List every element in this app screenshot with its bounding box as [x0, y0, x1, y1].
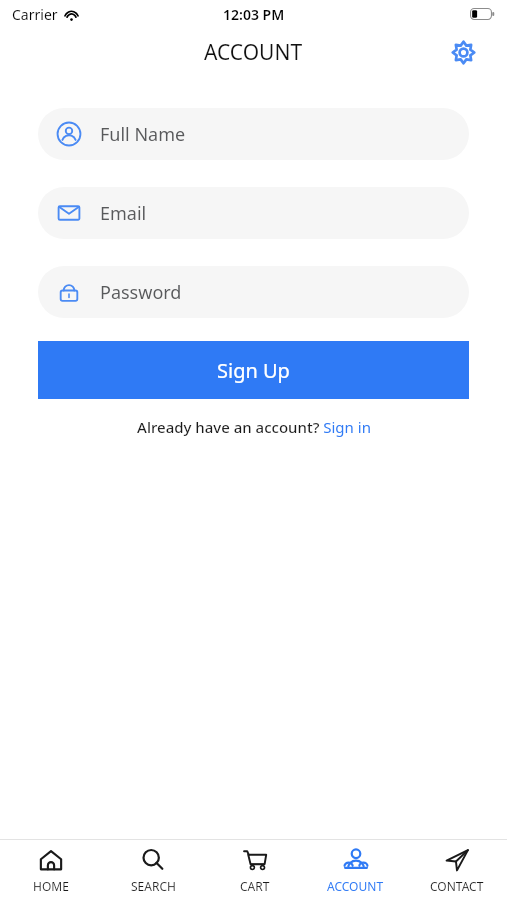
button[interactable]: SEARCH — [102, 840, 204, 900]
button[interactable]: Password — [38, 266, 469, 318]
button[interactable]: Full Name — [38, 108, 469, 160]
staticText: ACCOUNT — [327, 878, 384, 894]
staticText: ACCOUNT — [204, 38, 303, 67]
staticText: Email — [100, 201, 147, 226]
button[interactable]: Settings — [445, 34, 481, 70]
button[interactable]: HOME — [0, 840, 102, 900]
staticText: CART — [240, 878, 270, 894]
button[interactable]: CONTACT — [406, 840, 507, 900]
staticText: Sign Up — [217, 357, 290, 384]
staticText: Password — [100, 280, 182, 305]
staticText: Full Name — [100, 122, 186, 147]
button[interactable]: Sign Up — [38, 341, 469, 399]
staticText: SEARCH — [131, 878, 176, 894]
staticText: CONTACT — [430, 878, 484, 894]
button[interactable]: CART — [204, 840, 305, 900]
button[interactable]: Already have an account? Sign in — [129, 415, 379, 439]
staticText: 12:03 PM — [223, 5, 285, 24]
staticText: Carrier — [12, 5, 58, 24]
staticText: Already have an account? Sign in — [137, 417, 371, 437]
button[interactable]: Email — [38, 187, 469, 239]
button[interactable]: ACCOUNT — [305, 840, 406, 900]
staticText: HOME — [33, 878, 69, 894]
